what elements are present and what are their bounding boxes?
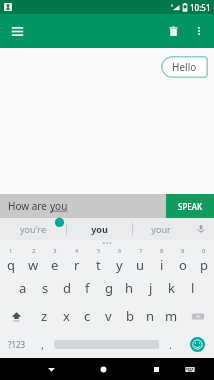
button[interactable]: Shift [0, 302, 33, 330]
button[interactable]: More options [186, 18, 212, 44]
staticText: , [41, 337, 44, 352]
staticText: your [151, 223, 171, 235]
staticText: Hello [172, 60, 197, 74]
button[interactable]: k [161, 274, 182, 302]
staticText: 6 [118, 247, 122, 255]
staticText: a [19, 279, 27, 297]
staticText: l [191, 279, 195, 297]
button[interactable]: How are [0, 194, 166, 218]
button[interactable]: s [34, 274, 56, 302]
staticText: 9 [181, 247, 185, 255]
button[interactable]: ?123 [0, 330, 33, 358]
button[interactable]: Hello [161, 56, 208, 78]
button[interactable]: 1 [0, 246, 22, 274]
staticText: s [42, 279, 49, 297]
button[interactable]: Open navigation menu [4, 18, 30, 44]
button[interactable]: your [133, 218, 188, 240]
staticText: 1 [9, 247, 13, 255]
staticText: 0 [202, 247, 206, 255]
button[interactable]: Delete [160, 18, 186, 44]
button[interactable]: j [140, 274, 161, 302]
button[interactable]: 4 [66, 246, 88, 274]
staticText: . [169, 337, 172, 352]
staticText: q [7, 256, 15, 274]
button[interactable]: a [12, 274, 34, 302]
staticText: b [126, 307, 134, 325]
staticText: 3 [53, 247, 57, 255]
button[interactable]: g [98, 274, 119, 302]
staticText: h [125, 279, 134, 297]
staticText: 5 [97, 247, 101, 255]
staticText: m [165, 307, 178, 325]
staticText: o [179, 256, 187, 274]
staticText: e [51, 256, 59, 274]
button[interactable]: Recent apps [140, 358, 173, 380]
button[interactable]: Home [87, 358, 120, 380]
staticText: t [96, 256, 101, 274]
staticText: you [91, 223, 108, 235]
staticText: g [105, 279, 113, 297]
button[interactable]: z [33, 302, 55, 330]
staticText: you're [20, 223, 46, 235]
button[interactable]: h [119, 274, 140, 302]
staticText: n [146, 307, 155, 325]
button[interactable]: 3 [44, 246, 66, 274]
button[interactable]: v [98, 302, 119, 330]
button[interactable]: you're [0, 218, 66, 240]
button[interactable]: x [55, 302, 77, 330]
button[interactable]: you [67, 218, 132, 240]
staticText: 2 [32, 247, 36, 255]
staticText: f [85, 279, 90, 297]
staticText: ?123 [8, 339, 26, 350]
button[interactable]: 8 [151, 246, 172, 274]
button[interactable]: n [140, 302, 161, 330]
button[interactable]: 0 [193, 246, 214, 274]
button[interactable]: Switch keyboard [173, 358, 206, 380]
button[interactable]: m [161, 302, 182, 330]
staticText: 10:51 [190, 2, 211, 13]
staticText: d [63, 279, 71, 297]
button[interactable]: 9 [172, 246, 193, 274]
staticText: 8 [160, 247, 164, 255]
staticText: c [84, 307, 91, 325]
button[interactable]: 2 [22, 246, 44, 274]
button[interactable]: SPEAK [166, 194, 214, 218]
staticText: w [28, 256, 39, 274]
button[interactable]: d [56, 274, 77, 302]
button[interactable]: , [33, 330, 52, 358]
staticText: 4 [75, 247, 79, 255]
button[interactable]: Backspace [182, 302, 214, 330]
button[interactable]: Emoji [180, 330, 214, 358]
staticText: k [168, 279, 175, 297]
button[interactable]: c [77, 302, 98, 330]
staticText: j [149, 279, 153, 297]
button[interactable]: . [161, 330, 180, 358]
staticText: i [160, 256, 164, 274]
staticText: How are [8, 199, 50, 213]
staticText: z [41, 307, 48, 325]
button[interactable]: Space [52, 330, 161, 358]
staticText: u [136, 256, 145, 274]
button[interactable]: b [119, 302, 140, 330]
button[interactable]: Voice input [188, 218, 214, 240]
staticText: r [74, 256, 80, 274]
staticText: you [50, 199, 68, 213]
button[interactable]: 7 [130, 246, 151, 274]
button[interactable]: 6 [109, 246, 130, 274]
button[interactable]: Back [35, 358, 67, 380]
button[interactable]: l [182, 274, 203, 302]
staticText: x [63, 307, 70, 325]
button[interactable]: 5 [88, 246, 109, 274]
staticText: v [105, 307, 112, 325]
staticText: y [116, 256, 123, 274]
button[interactable]: f [77, 274, 98, 302]
staticText: SPEAK [178, 201, 203, 212]
staticText: p [200, 256, 208, 274]
staticText: 7 [139, 247, 143, 255]
